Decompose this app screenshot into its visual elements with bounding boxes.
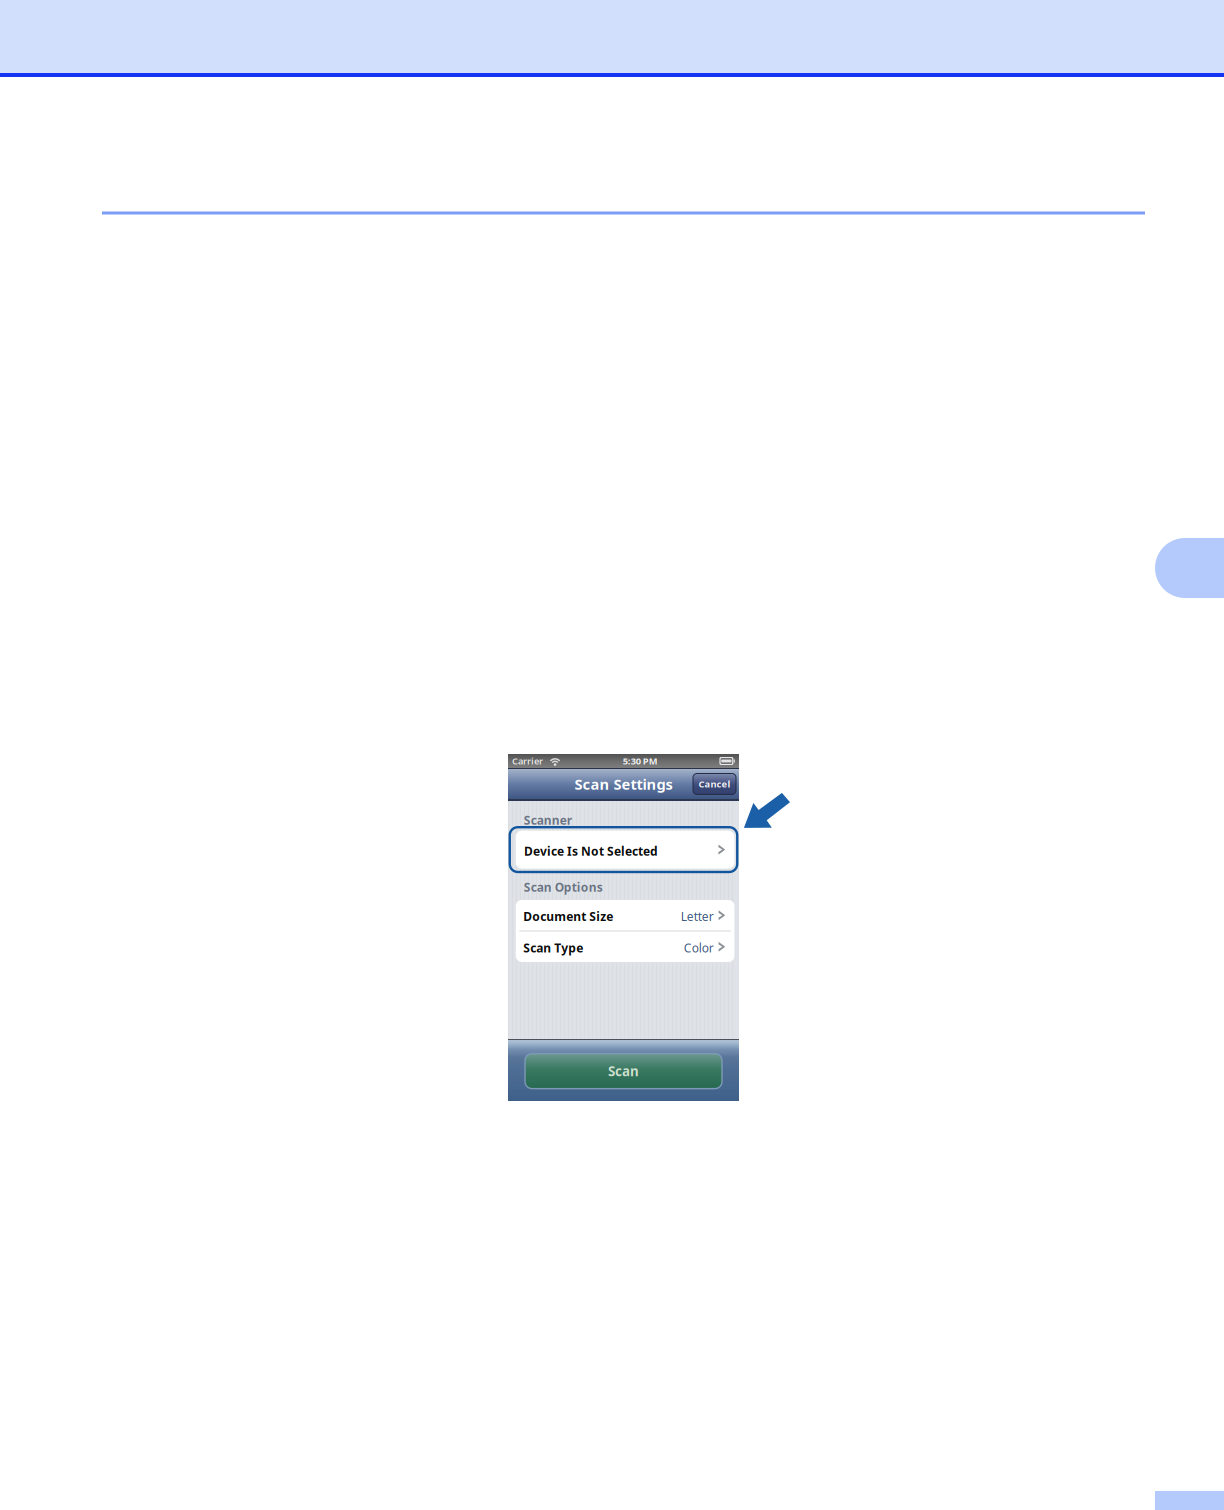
staticText: Scan [608, 1062, 639, 1080]
staticText: Scan Options [524, 879, 603, 895]
staticText: Color [684, 940, 714, 956]
staticText: 5:30 PM [623, 755, 658, 767]
staticText: Document Size [523, 908, 613, 924]
staticText: Scanner [524, 812, 572, 828]
staticText: Device Is Not Selected [524, 843, 658, 859]
staticText: Letter [681, 908, 714, 924]
button[interactable]: Scan Type [516, 931, 734, 962]
staticText: Cancel [698, 778, 730, 790]
staticText: Scan Settings [574, 774, 672, 794]
staticText: Scan Type [523, 940, 583, 956]
button[interactable]: Device Is Not Selected [508, 827, 739, 872]
staticText: Carrier [512, 755, 543, 767]
button[interactable]: Cancel [693, 773, 736, 794]
button[interactable]: Document Size [516, 900, 734, 931]
button[interactable]: Scan [525, 1054, 722, 1089]
